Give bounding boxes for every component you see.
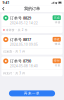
button[interactable]: 订单号 8829: [1, 13, 63, 33]
staticText: 待收: [54, 37, 60, 41]
staticText: 2024-05-12 14:22: [10, 21, 38, 25]
staticText: 订单号 8817: [10, 37, 31, 42]
staticText: 再来一单: [24, 91, 40, 96]
staticText: 2024-05-08 18:40: [10, 64, 38, 68]
staticText: 订单号 8790: [10, 58, 31, 64]
staticText: 未评价 · 共 2 件: [6, 28, 28, 32]
staticText: 待支付 · 共 3 件: [3, 71, 25, 75]
button[interactable]: 订单号 8790: [1, 57, 63, 76]
staticText: 9:41: [3, 0, 10, 5]
staticText: 详情: [55, 21, 61, 24]
staticText: 待付: [54, 59, 60, 63]
button[interactable]: Back: [2, 7, 5, 11]
staticText: 2024-05-10 09:05: [10, 43, 38, 47]
staticText: 订单号 8829: [10, 15, 31, 21]
button[interactable]: 再来一单: [9, 90, 55, 96]
staticText: 付款: [55, 64, 61, 67]
staticText: 完成: [54, 16, 60, 20]
staticText: 我的订单: [24, 6, 40, 11]
staticText: 已发货 · 共 1 件: [3, 50, 25, 53]
staticText: 物流: [55, 42, 61, 45]
button[interactable]: 订单号 8817: [1, 35, 63, 55]
